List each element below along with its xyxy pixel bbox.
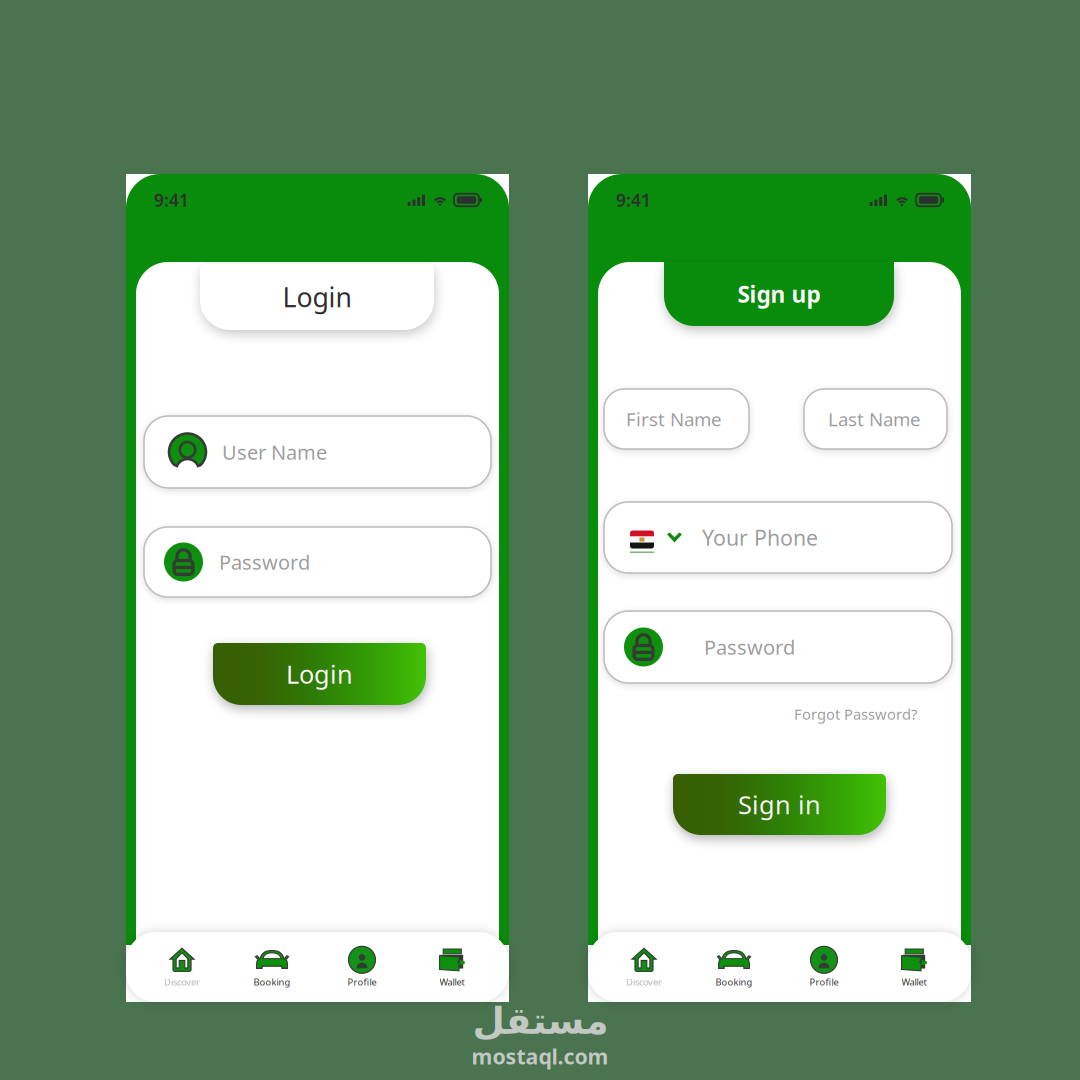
staticText: Discover xyxy=(164,976,200,988)
staticText: Last Name xyxy=(828,407,921,431)
staticText: Login xyxy=(286,657,353,691)
staticText: مستقل xyxy=(472,1000,608,1042)
staticText: 9:41 xyxy=(616,188,651,211)
staticText: Forgot Password? xyxy=(794,704,917,724)
button[interactable]: Your Phone xyxy=(604,502,952,573)
button[interactable]: Wallet xyxy=(407,945,497,989)
button[interactable]: Profile xyxy=(779,945,869,989)
button[interactable]: Booking xyxy=(689,945,779,989)
button[interactable]: Password xyxy=(144,527,491,597)
staticText: Booking xyxy=(253,976,290,988)
button[interactable]: Booking xyxy=(227,945,317,989)
staticText: User Name xyxy=(222,439,327,465)
button[interactable]: Discover xyxy=(599,945,689,989)
staticText: 9:41 xyxy=(154,188,189,211)
staticText: Password xyxy=(219,549,310,575)
button[interactable]: Login xyxy=(213,643,426,705)
staticText: Sign up xyxy=(737,279,820,309)
staticText: Wallet xyxy=(901,976,926,988)
staticText: Login xyxy=(282,279,351,315)
staticText: Booking xyxy=(715,976,752,988)
staticText: Your Phone xyxy=(702,523,818,552)
staticText: Profile xyxy=(347,976,376,988)
staticText: Sign in xyxy=(738,788,821,821)
button[interactable]: Forgot Password? xyxy=(767,701,917,727)
button[interactable]: User Name xyxy=(144,416,491,488)
staticText: mostaql.com xyxy=(471,1042,608,1070)
staticText: Password xyxy=(704,634,795,660)
button[interactable]: Login xyxy=(200,264,434,330)
staticText: Discover xyxy=(626,976,662,988)
staticText: Wallet xyxy=(439,976,464,988)
button[interactable]: Sign in xyxy=(673,774,886,835)
staticText: Profile xyxy=(809,976,838,988)
button[interactable]: Password xyxy=(604,611,952,683)
staticText: First Name xyxy=(626,407,722,431)
button[interactable]: Wallet xyxy=(869,945,959,989)
button[interactable]: Profile xyxy=(317,945,407,989)
button[interactable]: Discover xyxy=(137,945,227,989)
button[interactable]: Sign up xyxy=(664,262,894,326)
button[interactable]: First Name xyxy=(604,389,749,449)
button[interactable]: Last Name xyxy=(804,389,947,449)
